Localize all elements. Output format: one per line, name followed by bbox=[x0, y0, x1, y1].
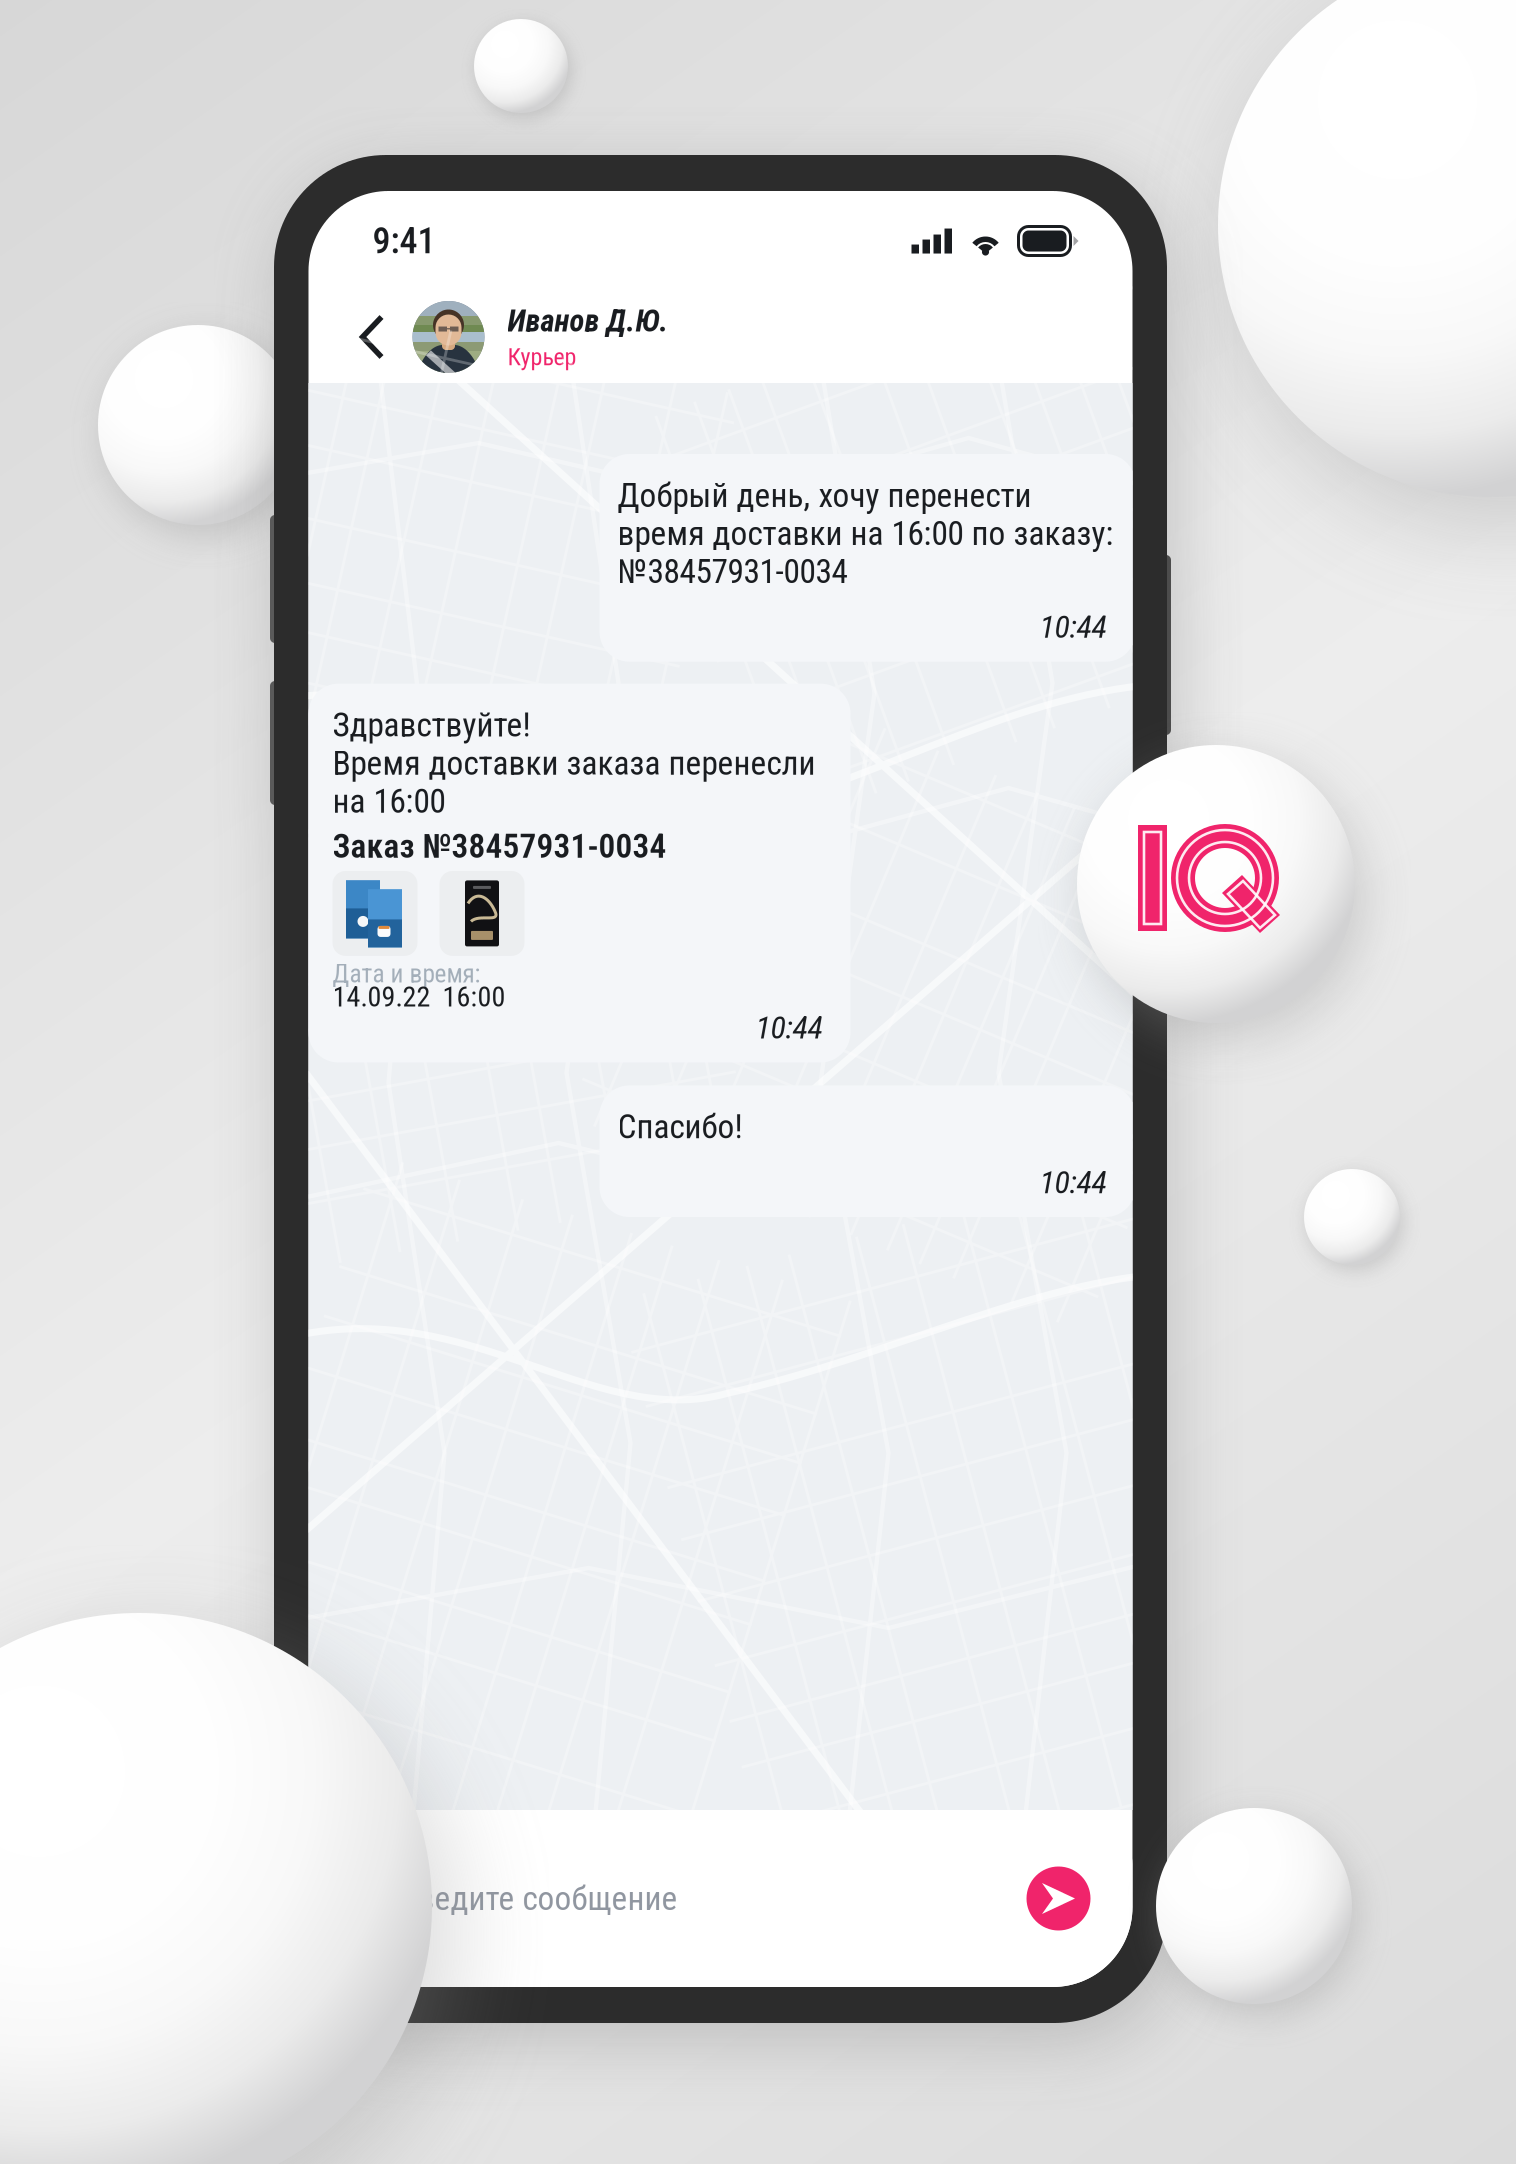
staticText: Дата и время: bbox=[332, 959, 480, 989]
staticText: Время доставки заказа перенесли bbox=[332, 744, 815, 783]
staticText: Курьер bbox=[507, 343, 576, 371]
staticText: №38457931-0034 bbox=[617, 552, 847, 591]
button[interactable]: Send bbox=[1026, 1866, 1090, 1930]
staticText: на 16:00 bbox=[332, 782, 445, 821]
staticText: 14.09.22 16:00 bbox=[332, 980, 505, 1013]
staticText: 9:41 bbox=[372, 220, 435, 262]
staticText: Спасибо! bbox=[617, 1107, 742, 1146]
staticText: Введите сообщение bbox=[399, 1879, 677, 1918]
staticText: Иванов Д.Ю. bbox=[507, 303, 668, 339]
staticText: 10:44 bbox=[1039, 1163, 1106, 1201]
staticText: Добрый день, хочу перенести bbox=[617, 476, 1031, 515]
staticText: время доставки на 16:00 по заказу: bbox=[617, 514, 1113, 553]
staticText: Здравствуйте! bbox=[332, 706, 530, 745]
staticText: Заказ №38457931-0034 bbox=[332, 827, 666, 866]
staticText: 10:44 bbox=[755, 1009, 822, 1046]
button[interactable]: Back bbox=[332, 296, 412, 378]
staticText: 10:44 bbox=[1039, 608, 1106, 646]
